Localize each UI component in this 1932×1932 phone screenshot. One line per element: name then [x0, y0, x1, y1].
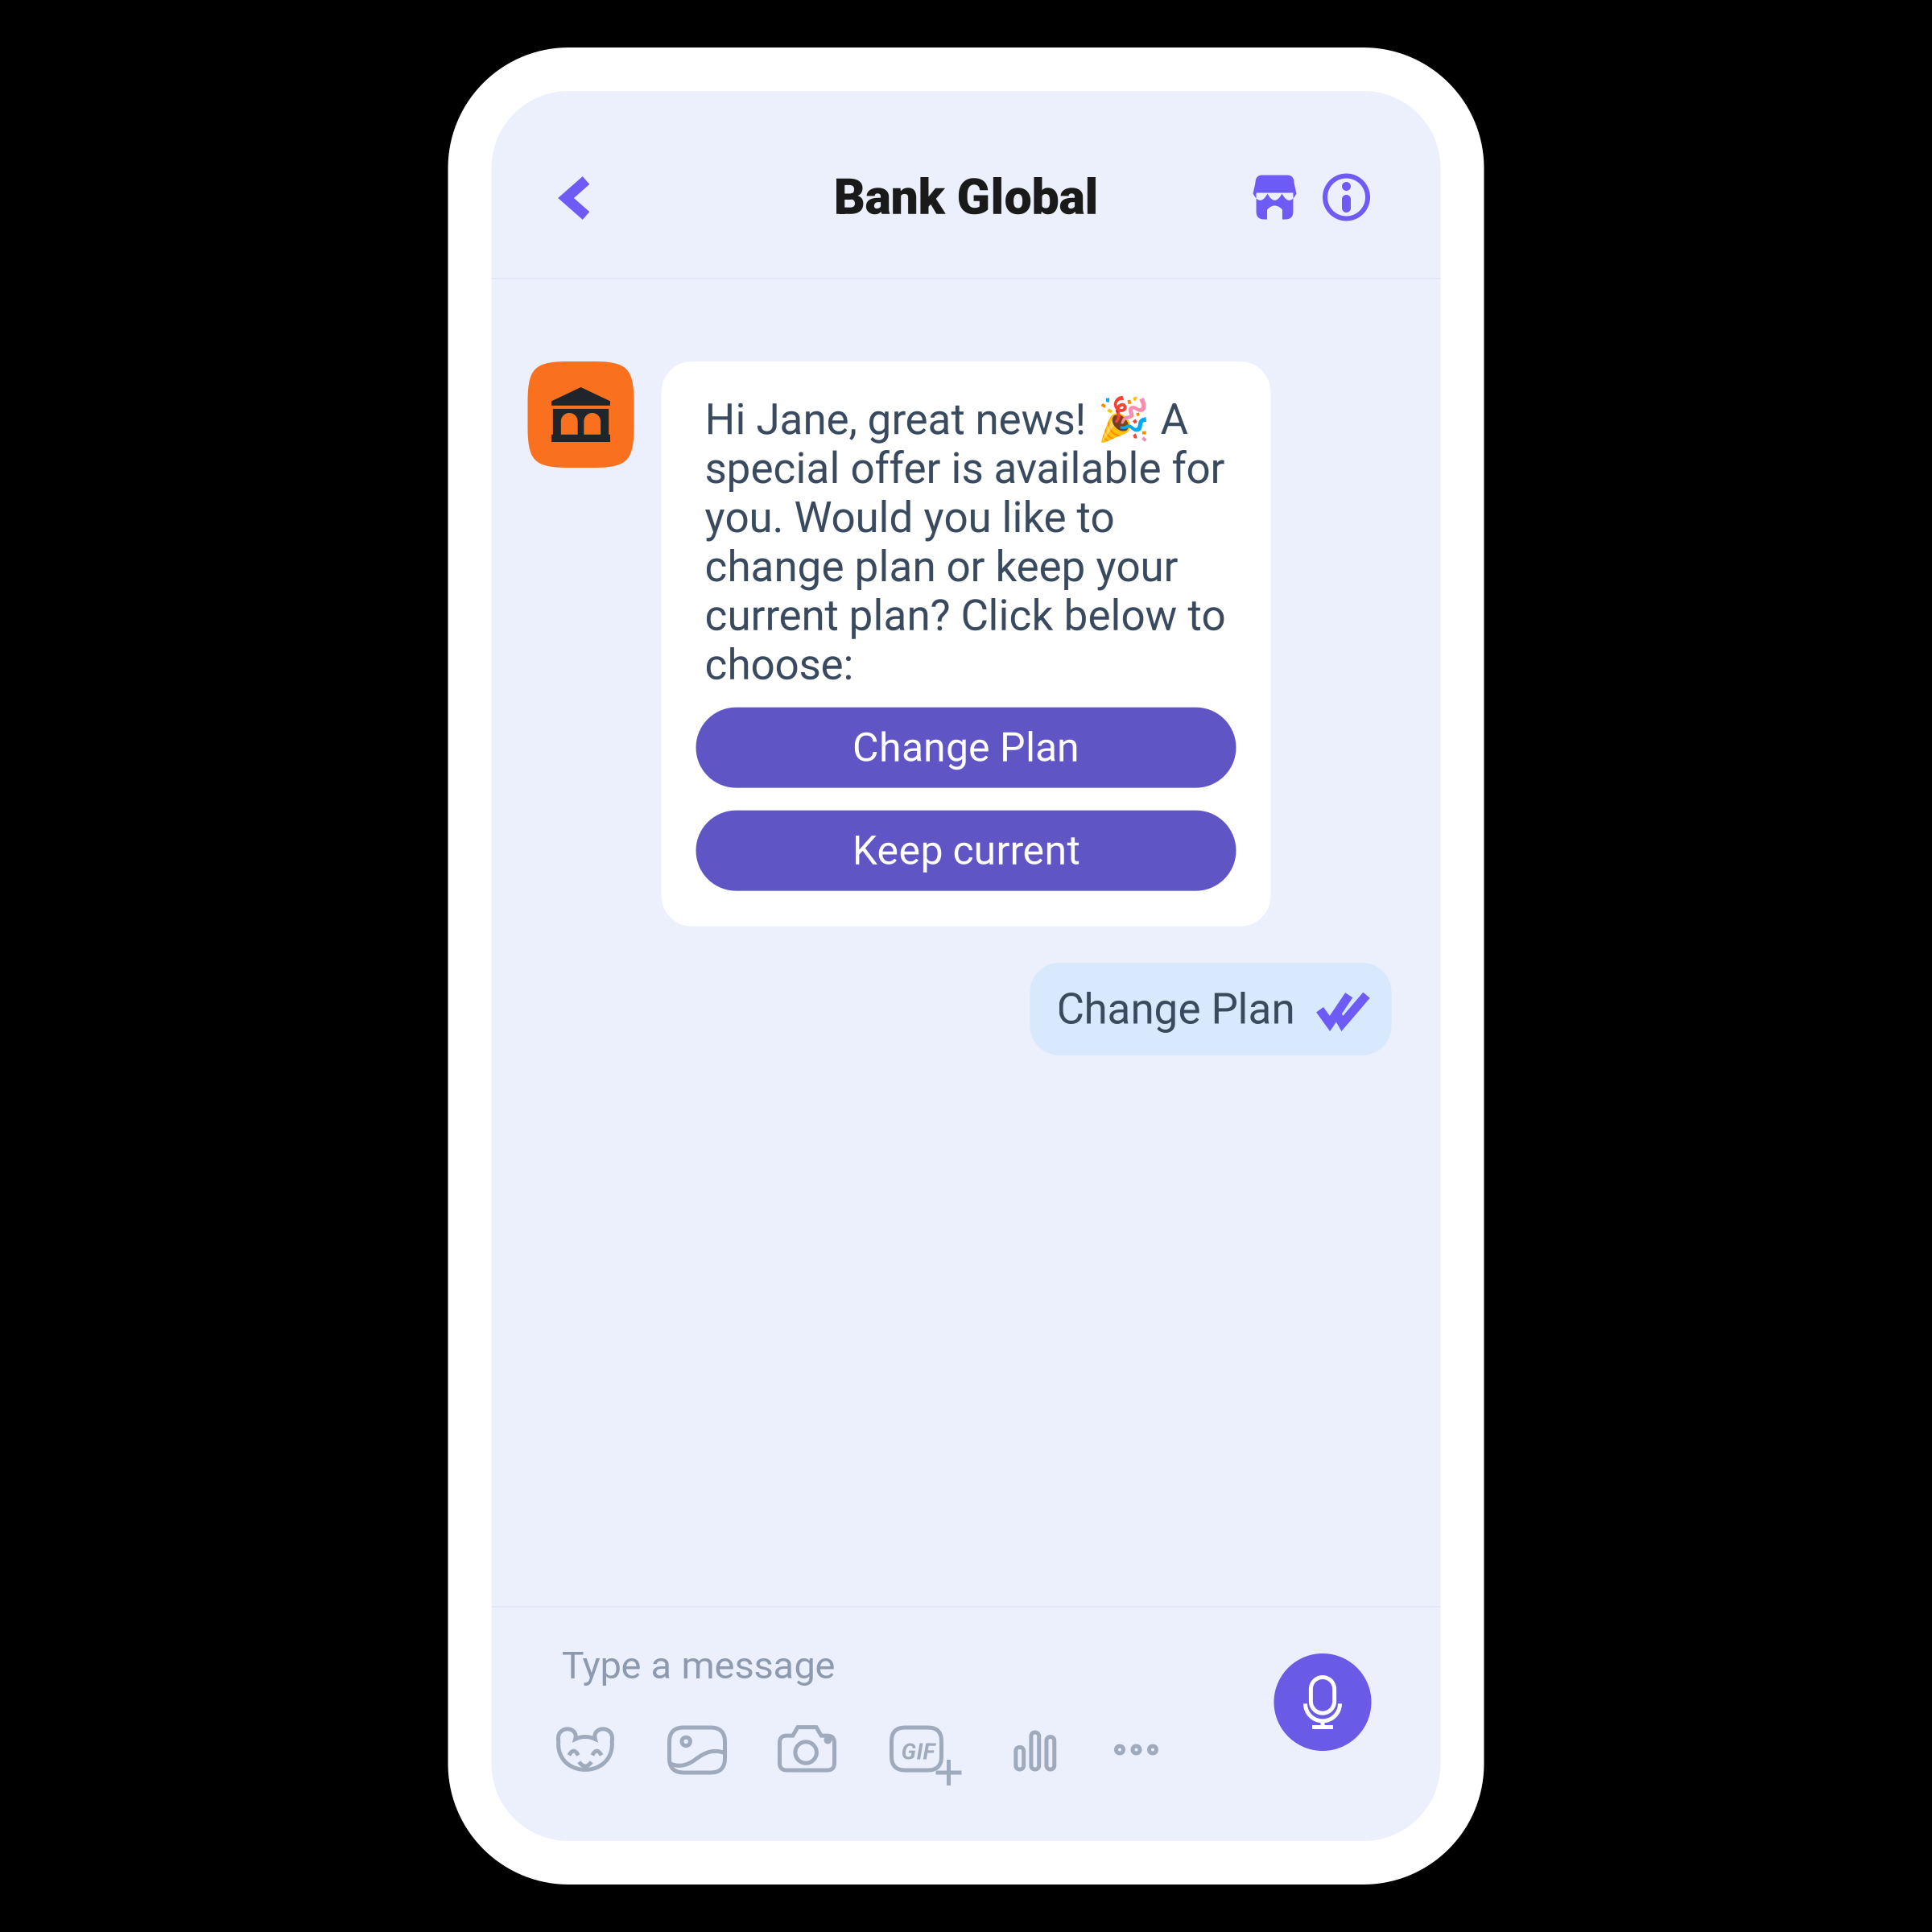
staticText: Change Plan [852, 724, 1080, 771]
button[interactable]: More [1096, 1730, 1177, 1769]
button[interactable]: Stickers [538, 1709, 632, 1789]
staticText: Hi Jane, great news! 🎉 A special offer i… [705, 394, 1226, 690]
button[interactable]: Photo [649, 1711, 745, 1789]
button[interactable]: Change Plan [696, 707, 1236, 788]
button[interactable]: Back [537, 157, 615, 239]
staticText: Bank Global [834, 168, 1098, 226]
button[interactable]: Record voice message [1274, 1653, 1371, 1751]
button[interactable]: Keep current [696, 810, 1236, 891]
staticText: Change Plan [1057, 984, 1295, 1034]
button[interactable]: Camera [760, 1710, 855, 1786]
button[interactable]: Store [1232, 155, 1317, 240]
staticText: Type a message [561, 1643, 835, 1688]
button[interactable]: Audio [993, 1716, 1078, 1785]
staticText: GIF [901, 1738, 935, 1765]
button[interactable]: Info [1304, 155, 1389, 240]
button[interactable]: GIF [871, 1711, 962, 1786]
staticText: Keep current [852, 827, 1080, 874]
